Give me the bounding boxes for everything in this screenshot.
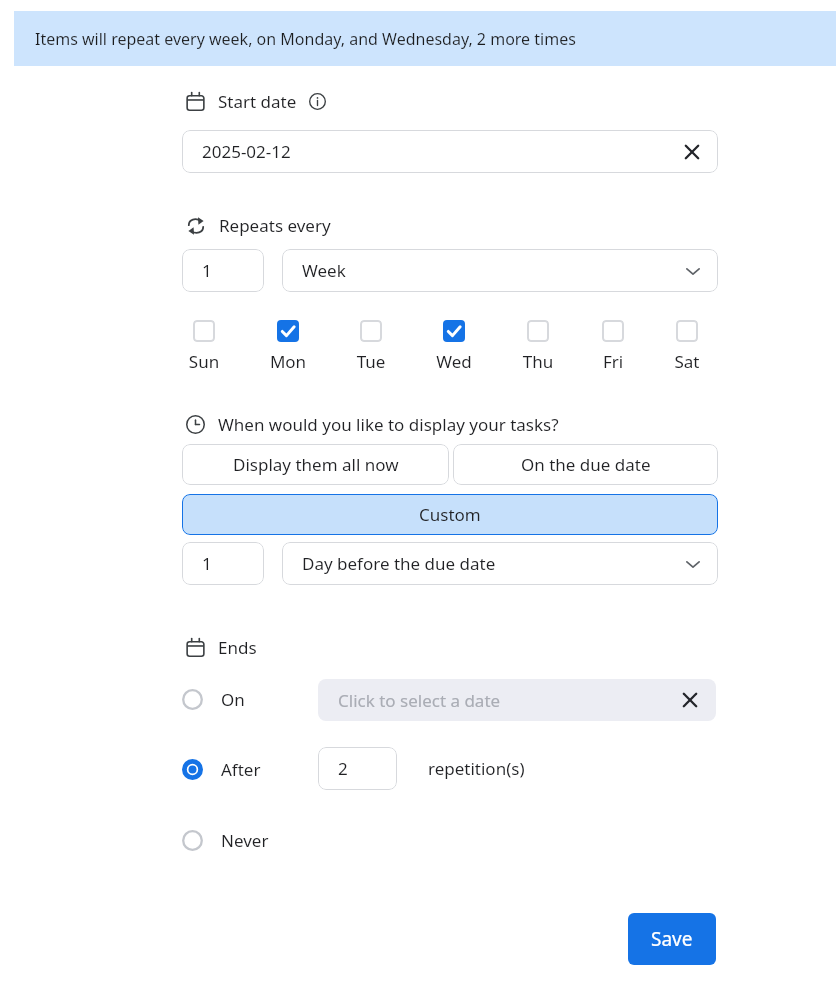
button[interactable]: Custom xyxy=(182,494,718,535)
button[interactable]: After xyxy=(182,755,312,783)
button[interactable]: 1 xyxy=(182,249,264,292)
staticText: After xyxy=(221,758,261,781)
button[interactable]: Sat xyxy=(657,320,717,373)
button[interactable]: More information xyxy=(309,93,326,110)
button[interactable]: Week xyxy=(282,249,718,292)
staticText: Mon xyxy=(258,350,318,373)
button[interactable]: Sun xyxy=(174,320,234,373)
button[interactable]: On xyxy=(182,685,312,713)
staticText: Wed xyxy=(424,350,484,373)
staticText: 1 xyxy=(202,259,212,282)
staticText: Week xyxy=(302,259,346,282)
staticText: Repeats every xyxy=(219,214,331,237)
button[interactable]: Clear start date xyxy=(682,142,702,162)
staticText: Thu xyxy=(508,350,568,373)
staticText: Sun xyxy=(174,350,234,373)
button[interactable]: Day before the due date xyxy=(282,542,718,585)
button[interactable]: Click to select a date xyxy=(318,679,716,721)
button[interactable]: Save xyxy=(628,913,716,965)
button[interactable]: Wed xyxy=(424,320,484,373)
staticText: Display them all now xyxy=(233,453,399,476)
staticText: On xyxy=(221,688,245,711)
staticText: Items will repeat every week, on Monday,… xyxy=(35,28,576,50)
staticText: repetition(s) xyxy=(428,757,525,780)
button[interactable]: Tue xyxy=(341,320,401,373)
staticText: Save xyxy=(651,926,693,952)
button[interactable]: 2025-02-12 xyxy=(182,130,718,173)
staticText: Sat xyxy=(657,350,717,373)
staticText: Tue xyxy=(341,350,401,373)
button[interactable]: Thu xyxy=(508,320,568,373)
staticText: When would you like to display your task… xyxy=(218,413,559,436)
staticText: Fri xyxy=(583,350,643,373)
staticText: Ends xyxy=(218,636,257,659)
button[interactable]: Clear end date xyxy=(680,690,700,710)
staticText: Start date xyxy=(218,90,297,113)
button[interactable]: Mon xyxy=(258,320,318,373)
staticText: 2 xyxy=(338,757,348,780)
staticText: On the due date xyxy=(521,453,651,476)
staticText: 2025-02-12 xyxy=(202,140,291,163)
staticText: 1 xyxy=(202,552,212,575)
staticText: Never xyxy=(221,829,269,852)
button[interactable]: Display them all now xyxy=(182,444,449,485)
staticText: Day before the due date xyxy=(302,552,496,575)
button[interactable]: Fri xyxy=(583,320,643,373)
button[interactable]: 1 xyxy=(182,542,264,585)
staticText: Click to select a date xyxy=(338,689,501,712)
staticText: Custom xyxy=(419,503,481,526)
button[interactable]: 2 xyxy=(318,747,397,790)
button[interactable]: On the due date xyxy=(453,444,718,485)
button[interactable]: Never xyxy=(182,826,312,854)
